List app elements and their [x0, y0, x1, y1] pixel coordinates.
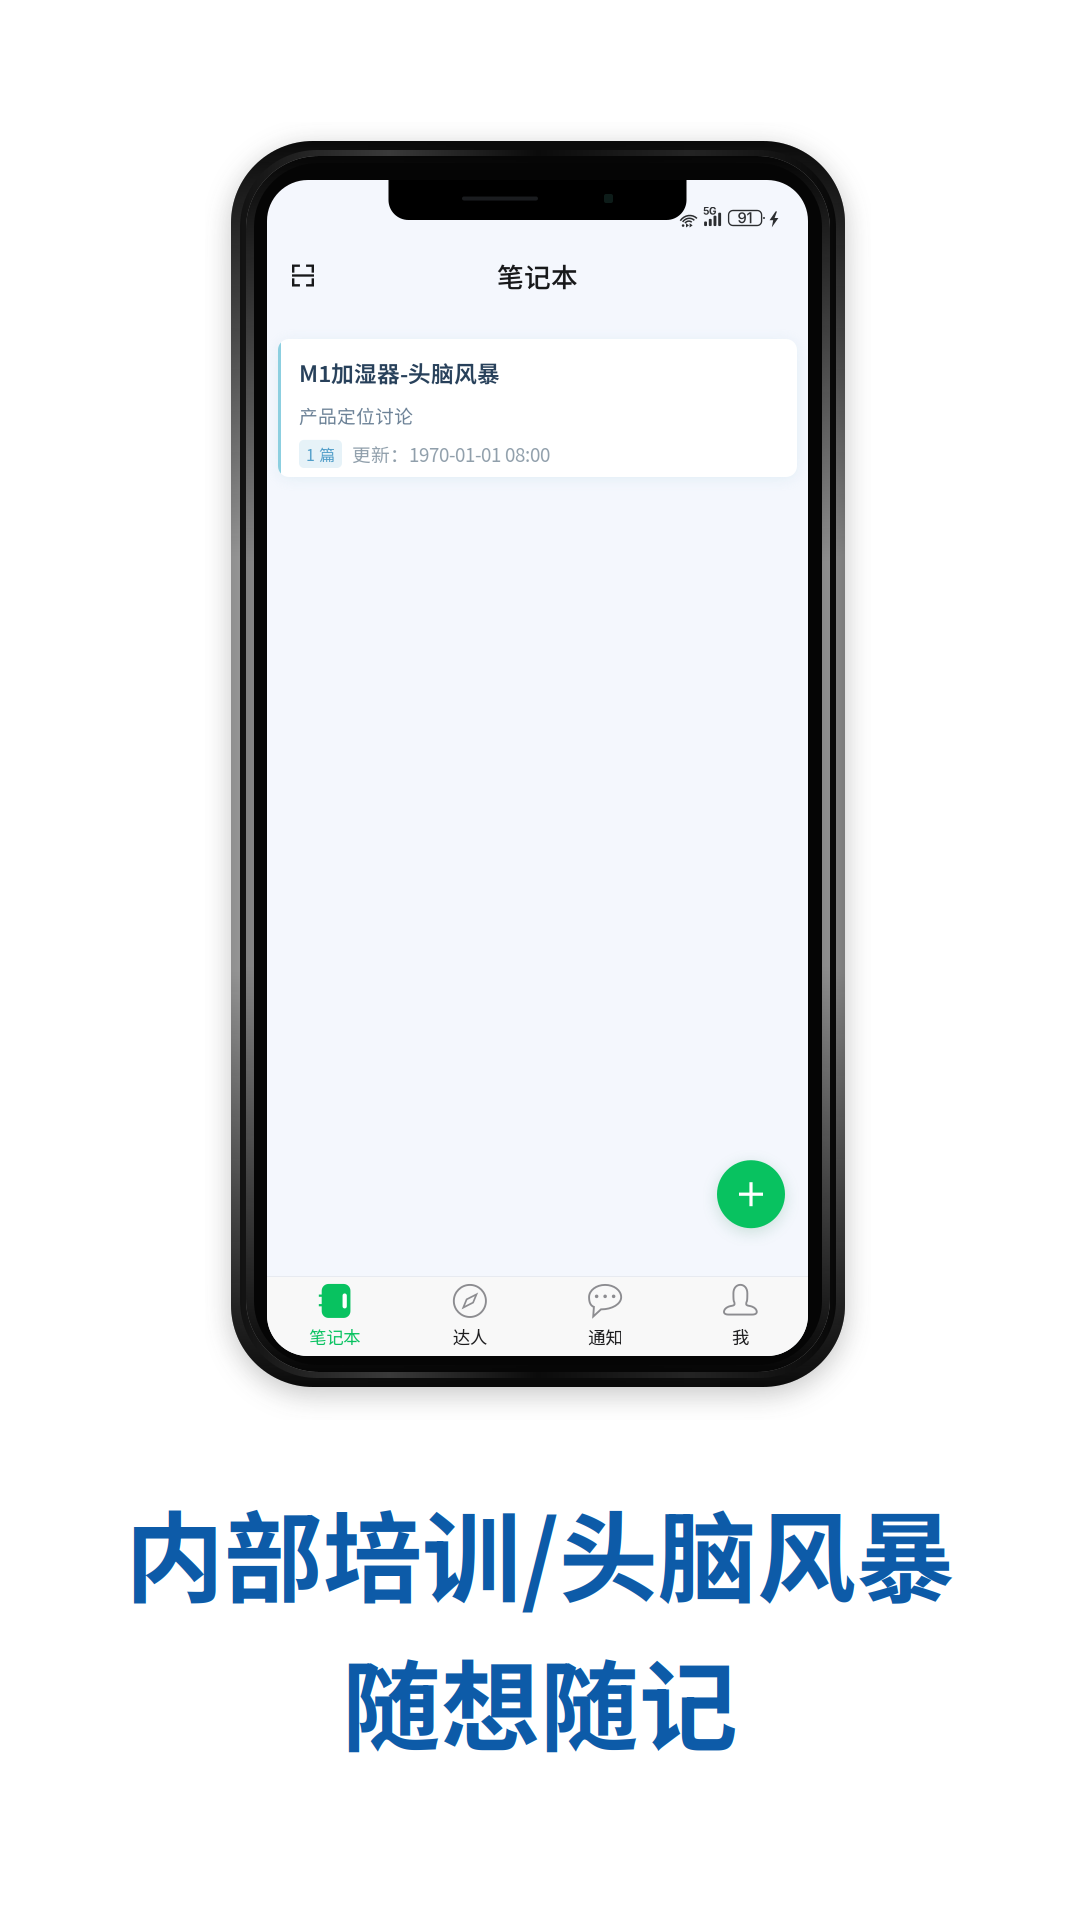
staticText: 随想随记 — [342, 1629, 738, 1772]
staticText: 笔记本 — [309, 1324, 360, 1349]
staticText: 1 篇 — [306, 442, 335, 466]
staticText: 内部培训/头脑风暴 — [125, 1480, 955, 1623]
staticText: 通知 — [588, 1324, 622, 1349]
button[interactable]: Scan — [279, 251, 327, 299]
button[interactable]: 通知 — [537, 1273, 673, 1360]
staticText: 达人 — [453, 1324, 487, 1349]
staticText: 我 — [732, 1324, 749, 1349]
button[interactable]: New note — [711, 1154, 791, 1234]
staticText: M1加湿器-头脑风暴 — [299, 356, 500, 389]
staticText: 更新：1970-01-01 08:00 — [352, 440, 550, 467]
staticText: 5G — [703, 205, 717, 217]
staticText: 笔记本 — [497, 256, 578, 295]
button[interactable]: 我 — [673, 1273, 808, 1360]
staticText: 产品定位讨论 — [299, 402, 413, 429]
button[interactable]: 笔记本 — [267, 1273, 402, 1360]
staticText: 91 — [738, 209, 753, 227]
button[interactable]: M1加湿器-头脑风暴 — [267, 339, 808, 477]
button[interactable]: 达人 — [402, 1273, 537, 1360]
